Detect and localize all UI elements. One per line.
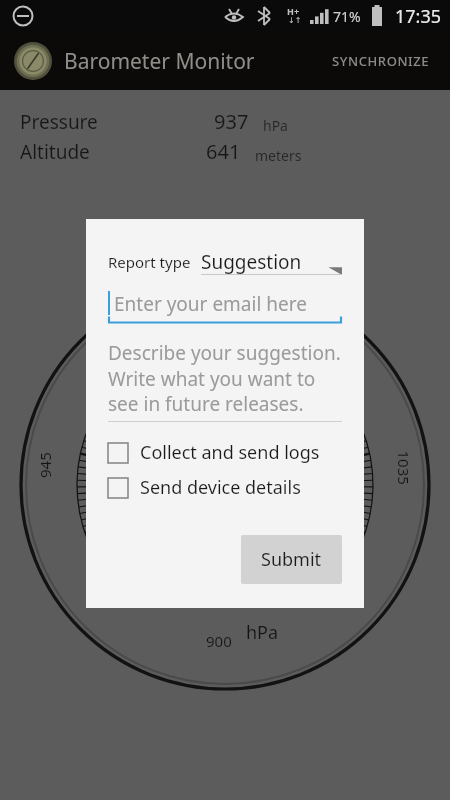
staticText: Suggestion <box>201 249 302 275</box>
button[interactable]: SYNCHRONIZE <box>326 42 436 80</box>
button[interactable]: Enter your email here <box>108 291 342 324</box>
button[interactable]: Report type dropdown <box>201 249 342 275</box>
staticText: H+ <box>287 5 300 17</box>
button[interactable]: Describe your suggestion. Write what you… <box>108 340 342 422</box>
staticText: Describe your suggestion. Write what you… <box>108 340 342 416</box>
staticText: Enter your email here <box>114 291 307 317</box>
staticText: hPa <box>263 116 288 135</box>
staticText: Altitude <box>20 139 90 165</box>
staticText: Collect and send logs <box>140 440 320 465</box>
button[interactable]: Submit <box>241 535 342 584</box>
staticText: 937 <box>214 108 249 135</box>
staticText: meters <box>255 146 302 165</box>
staticText: Pressure <box>20 109 98 135</box>
staticText: Send device details <box>140 475 301 500</box>
staticText: 945 <box>35 452 55 478</box>
staticText: Barometer Monitor <box>64 47 255 76</box>
staticText: 1035 <box>393 450 413 485</box>
staticText: 641 <box>206 138 241 165</box>
staticText: SYNCHRONIZE <box>332 52 430 70</box>
button[interactable]: Send device details <box>108 475 342 500</box>
staticText: 900 <box>206 631 232 651</box>
staticText: Submit <box>261 547 322 572</box>
staticText: Report type <box>108 252 191 272</box>
staticText: 71% <box>333 7 361 26</box>
staticText: 17:35 <box>395 4 442 29</box>
staticText: ↓↑ <box>288 16 302 25</box>
staticText: hPa <box>246 620 279 645</box>
button[interactable]: Collect and send logs <box>108 440 342 465</box>
